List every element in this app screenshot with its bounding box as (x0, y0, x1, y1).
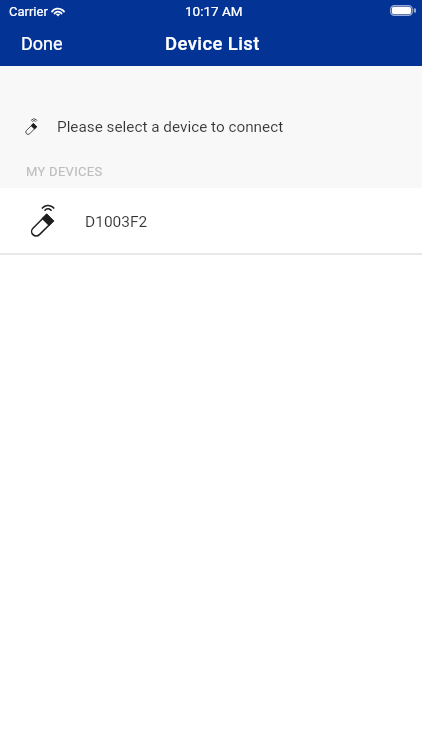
staticText: Done (21, 33, 63, 54)
staticText: Carrier (9, 4, 48, 19)
button[interactable]: Done (0, 27, 84, 60)
staticText: Please select a device to connect (57, 118, 284, 136)
staticText: D1003F2 (85, 213, 148, 231)
other: Wi-Fi signal (50, 5, 66, 16)
staticText: Device List (165, 33, 260, 55)
staticText: MY DEVICES (26, 164, 103, 179)
button[interactable]: Please select a device to connect (0, 66, 422, 160)
staticText: 10:17 AM (185, 3, 243, 19)
button[interactable]: D1003F2 (0, 188, 422, 253)
other: Battery (390, 5, 416, 16)
